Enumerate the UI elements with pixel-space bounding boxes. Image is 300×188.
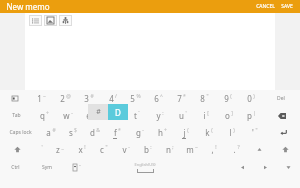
button[interactable]: Insert image (44, 15, 57, 26)
staticText: - (142, 127, 144, 134)
staticText: p (247, 110, 252, 121)
staticText: e (86, 110, 91, 121)
staticText: u (179, 110, 184, 121)
staticText: " (206, 93, 209, 100)
staticText: 0 (247, 93, 252, 104)
button[interactable]: e (79, 107, 102, 124)
button[interactable]: Left (231, 158, 254, 177)
staticText: i (203, 110, 206, 121)
button[interactable]: Enter (266, 124, 300, 141)
button[interactable]: Shift (0, 141, 34, 158)
button[interactable]: Bullet list (29, 15, 42, 26)
button[interactable]: f (106, 124, 128, 141)
button[interactable]: s (62, 124, 84, 141)
button[interactable]: Shift (271, 141, 300, 158)
staticText: f (114, 127, 117, 138)
button[interactable]: 3 (77, 90, 101, 107)
button[interactable]: Backspace (263, 107, 300, 124)
button[interactable]: i (194, 107, 217, 124)
staticText: x (78, 144, 83, 155)
staticText: " (255, 127, 258, 134)
staticText: s (69, 127, 73, 138)
button[interactable]: 6 (147, 90, 170, 107)
staticText: SAVE (281, 3, 293, 10)
staticText: # (90, 93, 94, 100)
staticText: Ctrl (11, 164, 20, 171)
staticText: n (166, 144, 171, 155)
button[interactable]: Up (247, 141, 271, 158)
button[interactable]: y (148, 107, 171, 124)
staticText: & (96, 127, 100, 134)
button[interactable]: g (128, 124, 151, 141)
staticText: ^ (160, 93, 163, 100)
button[interactable]: p (240, 107, 263, 124)
button[interactable]: k (197, 124, 220, 141)
staticText: ? (237, 144, 240, 151)
button[interactable]: 5 (124, 90, 147, 107)
button[interactable]: o (217, 107, 240, 124)
button[interactable]: ' (243, 124, 266, 141)
staticText: English(US) (134, 162, 156, 167)
staticText: d (90, 127, 95, 138)
button[interactable]: x (71, 141, 93, 158)
button[interactable]: t (125, 107, 148, 124)
button[interactable]: v (115, 141, 137, 158)
button[interactable]: d (84, 124, 106, 141)
button[interactable]: m (181, 141, 203, 158)
staticText: ⌃ (78, 164, 82, 169)
staticText: b (144, 144, 149, 155)
button[interactable]: u (171, 107, 194, 124)
button[interactable]: Keyboard settings (0, 90, 29, 107)
staticText: c (100, 144, 104, 155)
button[interactable]: c (93, 141, 115, 158)
button[interactable]: z (49, 141, 71, 158)
button[interactable]: Attach (59, 15, 72, 26)
button[interactable]: Down (254, 158, 277, 177)
staticText: 4 (109, 93, 114, 104)
staticText: * (183, 93, 186, 100)
button[interactable]: l (220, 124, 243, 141)
button[interactable]: , (203, 141, 225, 158)
button[interactable]: Tab (0, 107, 33, 124)
button[interactable]: SAVE (278, 0, 296, 13)
staticText: % (114, 110, 119, 117)
button[interactable]: q (33, 107, 56, 124)
staticText: o (225, 110, 230, 121)
button[interactable]: 7 (170, 90, 193, 107)
button[interactable]: a (40, 124, 62, 141)
staticText: # (52, 127, 56, 134)
button[interactable]: h (151, 124, 174, 141)
button[interactable]: b (137, 141, 159, 158)
button[interactable]: n (159, 141, 181, 158)
staticText: Tab (12, 112, 21, 119)
button[interactable]: Sym (31, 158, 62, 177)
button[interactable]: 2 (53, 90, 77, 107)
button[interactable]: Ctrl (0, 158, 31, 177)
staticText: D (115, 107, 121, 118)
button[interactable]: 0 (239, 90, 262, 107)
button[interactable]: 4 (101, 90, 124, 107)
button[interactable]: Caps lock (0, 124, 40, 141)
staticText: y (156, 110, 161, 121)
button[interactable]: CANCEL (253, 0, 278, 13)
staticText: 9 (224, 93, 229, 104)
staticText: l (229, 127, 232, 138)
button[interactable]: w (56, 107, 79, 124)
staticText: + (164, 127, 167, 134)
button[interactable]: 9 (216, 90, 239, 107)
button[interactable]: Del (262, 90, 300, 107)
button[interactable]: . (225, 141, 247, 158)
button[interactable]: 1 (29, 90, 53, 107)
button[interactable]: 8 (193, 90, 216, 107)
staticText: Caps lock (9, 129, 32, 136)
staticText: v (122, 144, 127, 155)
button[interactable]: j (174, 124, 197, 141)
button[interactable]: Right (277, 158, 300, 177)
button[interactable]: Voice input (62, 158, 93, 177)
staticText: t (134, 110, 137, 121)
button[interactable]: English(US) (93, 158, 197, 177)
button[interactable]: r (102, 107, 125, 124)
